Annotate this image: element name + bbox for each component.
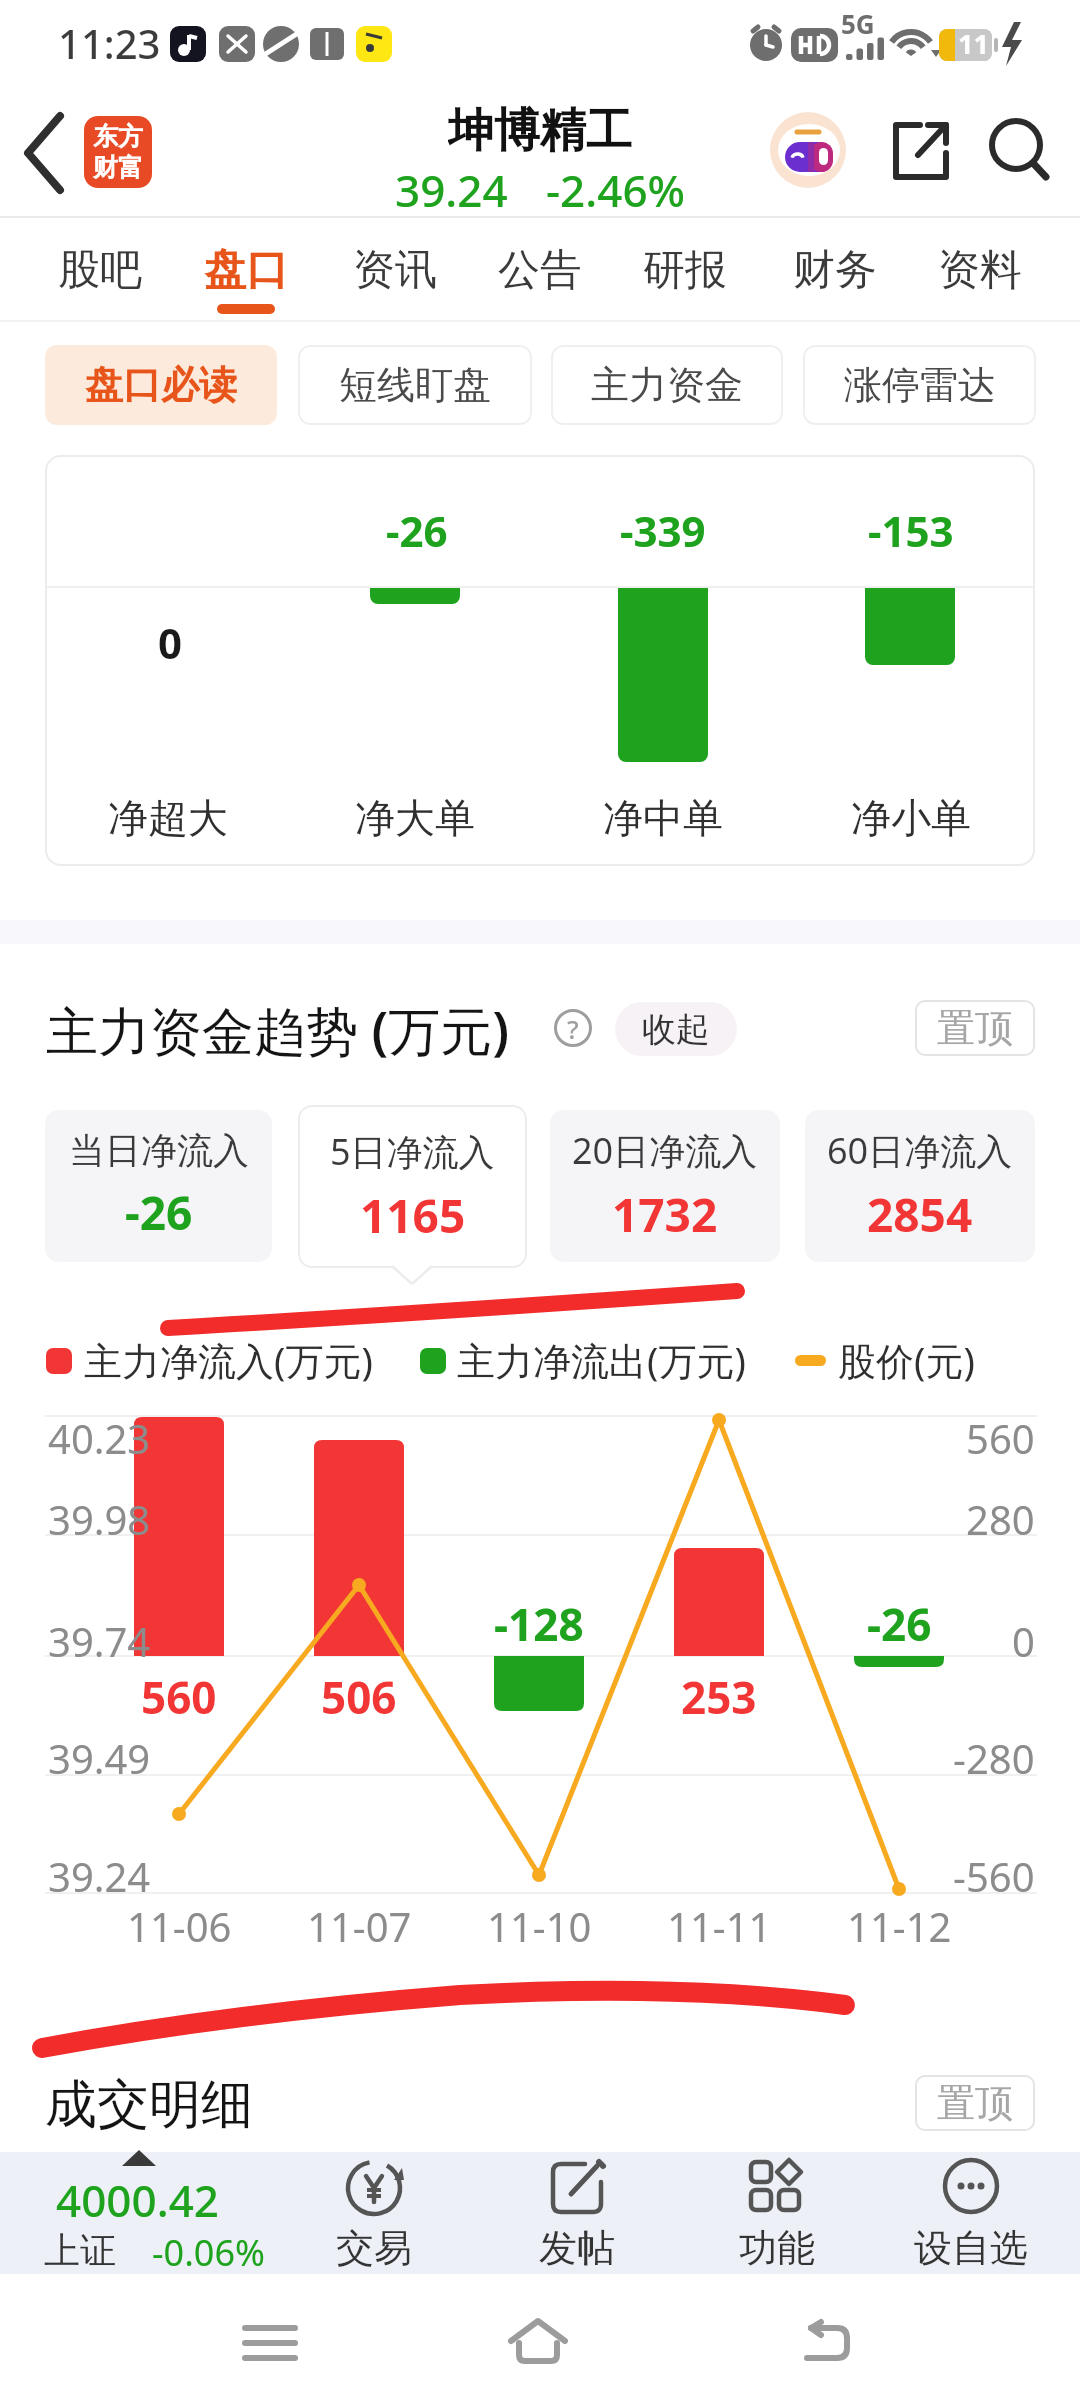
button[interactable]: 资讯	[325, 240, 465, 300]
staticText: 11	[958, 25, 989, 61]
button[interactable]: 置顶	[915, 1000, 1035, 1056]
button[interactable]: 设自选	[901, 2156, 1041, 2272]
staticText: 4000.42	[56, 2170, 219, 2220]
button[interactable]: 财务	[765, 240, 905, 300]
staticText: -560	[953, 1849, 1035, 1901]
staticText: -26	[386, 502, 448, 558]
staticText: 560	[141, 1667, 217, 1723]
staticText: 净小单	[851, 793, 971, 843]
staticText: 11:23	[58, 16, 161, 70]
button[interactable]: 研报	[615, 240, 755, 300]
button[interactable]	[225, 2310, 315, 2380]
staticText: 11-12	[847, 1899, 952, 1953]
staticText: 净中单	[603, 793, 723, 843]
button[interactable]: 资料	[910, 240, 1050, 300]
staticText: 506	[321, 1667, 397, 1723]
button[interactable]: 东方	[84, 116, 152, 188]
staticText: 39.24	[395, 160, 508, 214]
button[interactable]	[495, 2305, 585, 2380]
staticText: 39.49	[48, 1731, 151, 1785]
staticText: -280	[953, 1731, 1035, 1783]
button[interactable]: 股吧	[30, 240, 170, 300]
staticText: 560	[966, 1411, 1035, 1463]
staticText: 40.23	[48, 1411, 151, 1465]
staticText: 置顶	[937, 1004, 1013, 1052]
button[interactable]	[884, 117, 954, 187]
staticText: 1732	[612, 1183, 718, 1246]
staticText: 280	[966, 1492, 1035, 1544]
staticText: -128	[494, 1594, 584, 1650]
staticText: 交易	[336, 2224, 412, 2272]
staticText: -26	[867, 1594, 932, 1650]
staticText: 资讯	[353, 244, 437, 297]
button[interactable]	[770, 112, 846, 188]
staticText: ?	[567, 1011, 579, 1046]
staticText: 上证	[44, 2228, 116, 2273]
staticText: -153	[868, 502, 954, 558]
staticText: 发帖	[539, 2224, 615, 2272]
button[interactable]: 交易	[304, 2156, 444, 2272]
button[interactable]	[14, 108, 78, 198]
staticText: 11-06	[127, 1899, 232, 1953]
staticText: 净超大	[108, 793, 228, 843]
staticText: 盘口	[204, 244, 288, 297]
staticText: 39.24	[48, 1849, 151, 1903]
button[interactable]: 5日净流入	[298, 1105, 527, 1268]
staticText: 主力资金	[591, 361, 743, 409]
button[interactable]	[780, 2308, 870, 2380]
staticText: 成交明细	[45, 2072, 253, 2138]
button[interactable]: 功能	[707, 2156, 847, 2272]
staticText: 股价(元)	[838, 1334, 975, 1386]
button[interactable]: 发帖	[507, 2156, 647, 2272]
staticText: 11-10	[487, 1899, 592, 1953]
staticText: 财务	[793, 244, 877, 297]
staticText: 5日净流入	[330, 1127, 495, 1176]
staticText: 坤博精工	[448, 102, 632, 158]
staticText: 20日净流入	[572, 1126, 758, 1175]
staticText: 研报	[643, 244, 727, 297]
staticText: 0	[1012, 1614, 1035, 1666]
button[interactable]	[986, 117, 1054, 185]
button[interactable]: 短线盯盘	[298, 345, 532, 425]
button[interactable]: 主力资金	[551, 345, 783, 425]
button[interactable]: 盘口	[176, 240, 316, 300]
staticText: -0.06%	[152, 2228, 265, 2277]
staticText: 11-11	[667, 1899, 772, 1953]
staticText: 短线盯盘	[339, 361, 491, 409]
staticText: 盘口必读	[85, 361, 237, 409]
staticText: 公告	[498, 244, 582, 297]
staticText: -2.46%	[546, 160, 686, 214]
staticText: 当日净流入	[69, 1128, 249, 1173]
staticText: 60日净流入	[827, 1126, 1013, 1175]
staticText: 11-07	[307, 1899, 412, 1953]
button[interactable]: 4000.42	[20, 2162, 300, 2272]
staticText: 2854	[867, 1183, 973, 1246]
button[interactable]: 收起	[615, 1002, 737, 1056]
staticText: 5G	[841, 6, 875, 38]
staticText: 主力净流出(万元)	[457, 1334, 746, 1386]
staticText: 净大单	[355, 793, 475, 843]
staticText: -26	[125, 1181, 193, 1244]
staticText: -339	[620, 502, 706, 558]
staticText: 253	[681, 1667, 757, 1723]
staticText: 主力资金趋势 (万元)	[46, 994, 510, 1065]
button[interactable]: 涨停雷达	[803, 345, 1036, 425]
staticText: 设自选	[914, 2224, 1028, 2272]
button[interactable]: 60日净流入	[805, 1110, 1035, 1262]
staticText: 0	[158, 614, 183, 670]
button[interactable]: 公告	[470, 240, 610, 300]
button[interactable]: 置顶	[915, 2075, 1035, 2131]
staticText: 收起	[642, 1008, 710, 1051]
staticText: 涨停雷达	[844, 361, 996, 409]
button[interactable]: 20日净流入	[550, 1110, 780, 1262]
button[interactable]: 盘口必读	[45, 345, 277, 425]
staticText: 1165	[360, 1184, 466, 1247]
staticText: 主力净流入(万元)	[84, 1334, 373, 1386]
staticText: 39.74	[48, 1614, 151, 1668]
staticText: 39.98	[48, 1492, 151, 1546]
button[interactable]: 当日净流入	[45, 1110, 272, 1262]
staticText: 东方	[93, 121, 143, 152]
staticText: 置顶	[937, 2079, 1013, 2127]
staticText: 股吧	[58, 244, 142, 297]
staticText: 财富	[93, 152, 143, 183]
